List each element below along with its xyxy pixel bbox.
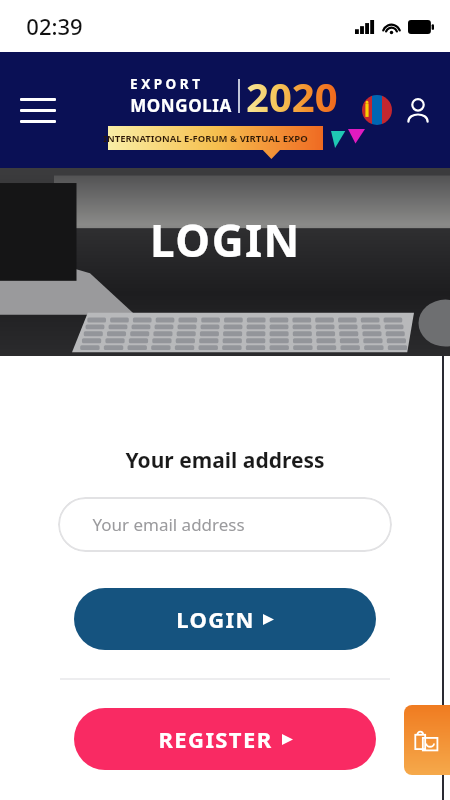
button[interactable]: REGISTER: [74, 708, 376, 770]
staticText: Your email address: [92, 513, 245, 536]
staticText: INTERNATIONAL E-FORUM & VIRTUAL EXPO: [103, 132, 308, 145]
staticText: Your email address: [125, 446, 325, 475]
staticText: REGISTER: [158, 724, 273, 754]
button[interactable]: Language: [362, 95, 392, 125]
button[interactable]: Menu: [20, 90, 60, 130]
staticText: LOGIN: [176, 604, 255, 634]
staticText: 2020: [246, 69, 338, 123]
button[interactable]: Shop: [404, 705, 450, 775]
button[interactable]: Account: [400, 92, 436, 128]
staticText: 02:39: [26, 11, 83, 41]
staticText: LOGIN: [150, 210, 301, 270]
staticText: E X P O R T: [130, 75, 200, 93]
staticText: MONGOLIA: [130, 94, 232, 117]
button[interactable]: LOGIN: [74, 588, 376, 650]
button[interactable]: Your email address: [58, 497, 392, 552]
